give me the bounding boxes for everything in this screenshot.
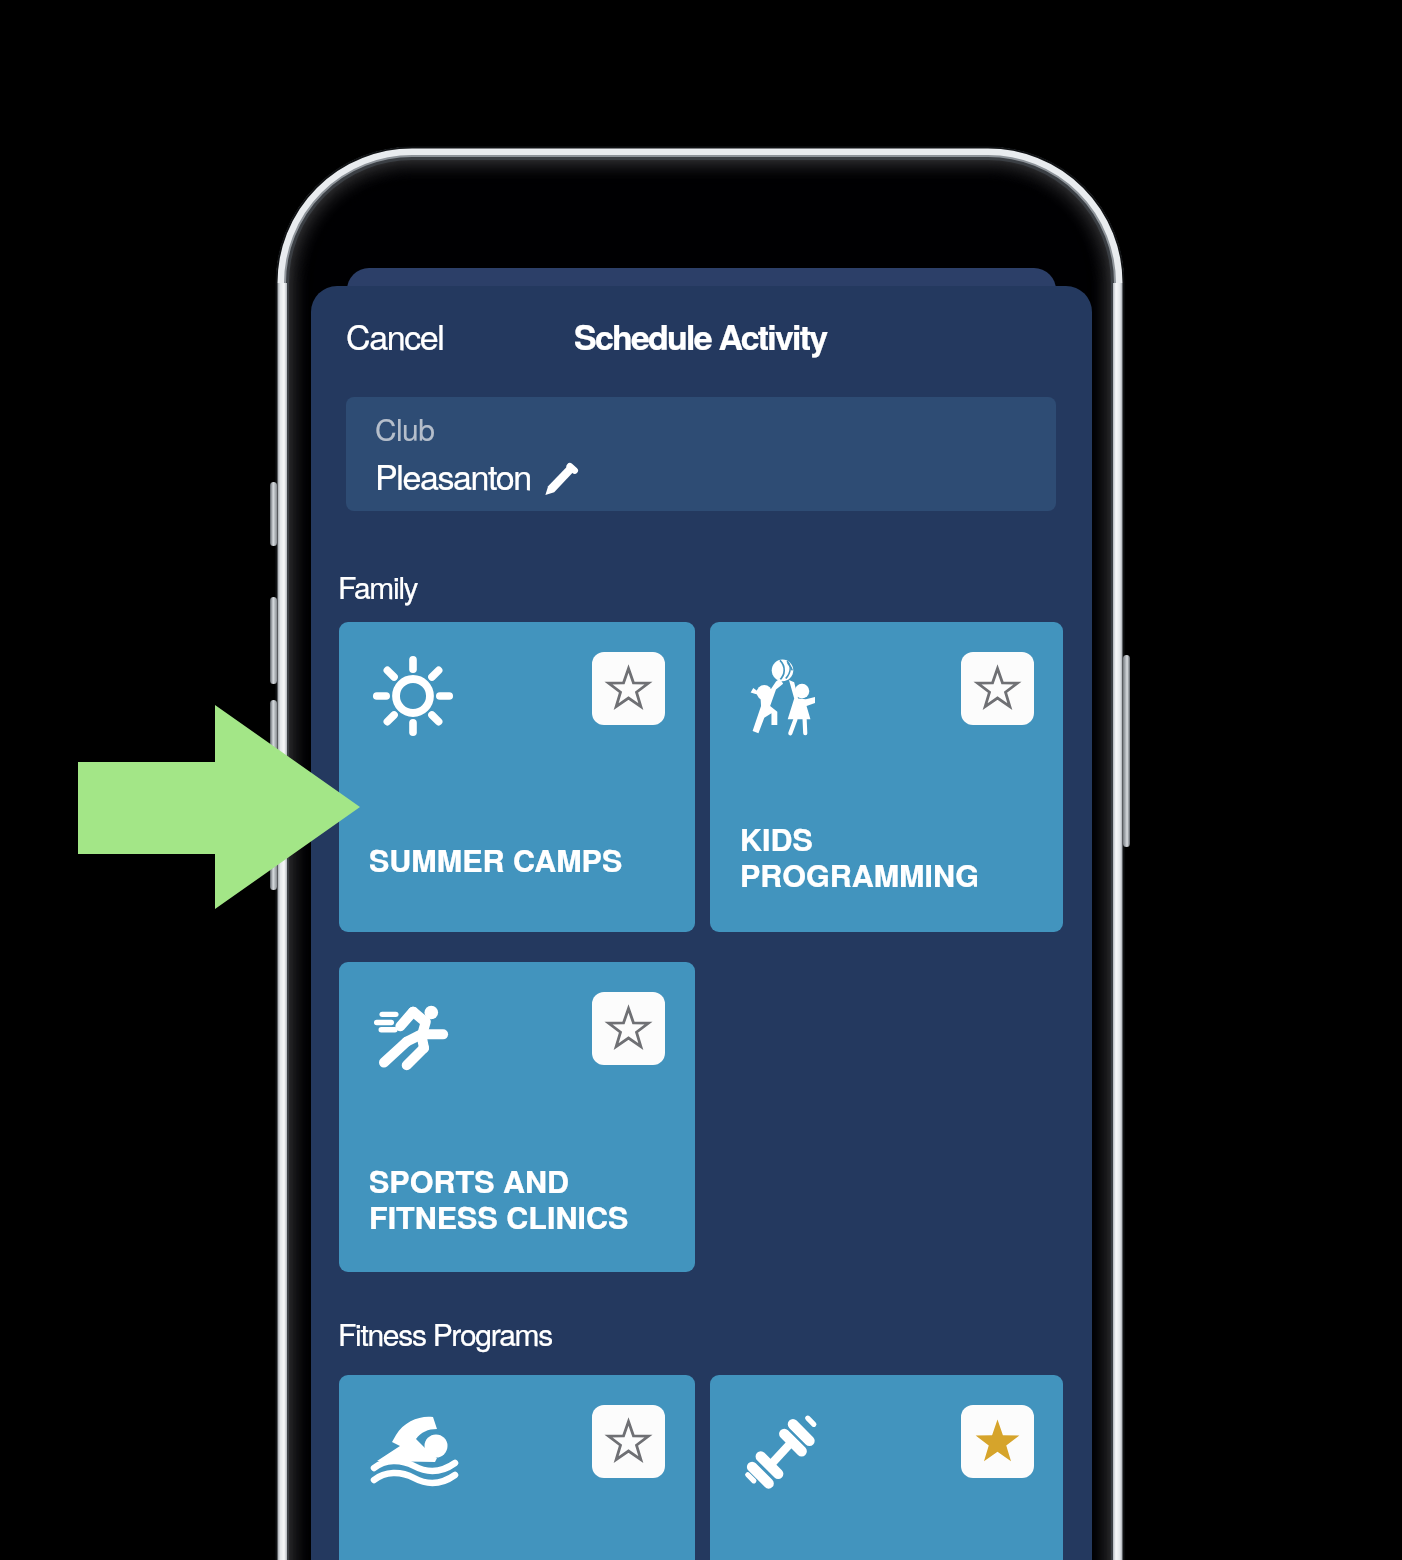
button[interactable]: Club: [346, 397, 1056, 511]
button[interactable]: Favorite: [961, 652, 1034, 725]
staticText: Family: [338, 565, 418, 608]
staticText: Club: [375, 407, 435, 450]
button[interactable]: Favorite: [592, 992, 665, 1065]
button[interactable]: Favorite: [961, 1405, 1034, 1478]
staticText: SUMMER CAMPS: [369, 838, 623, 882]
button[interactable]: Swimming: [339, 1375, 695, 1560]
button[interactable]: Cancel: [335, 309, 455, 361]
button[interactable]: Favorite: [710, 622, 1063, 932]
button[interactable]: Favorite: [592, 1405, 665, 1478]
staticText: Cancel: [346, 311, 444, 360]
staticText: Schedule Activity: [574, 312, 827, 361]
button[interactable]: Favorite: [339, 622, 695, 932]
staticText: KIDS PROGRAMMING: [740, 817, 980, 897]
button[interactable]: Favorite: [592, 652, 665, 725]
staticText: SPORTS AND FITNESS CLINICS: [369, 1159, 629, 1239]
staticText: Fitness Programs: [338, 1312, 552, 1355]
staticText: Pleasanton: [375, 451, 531, 500]
button[interactable]: Strength training: [710, 1375, 1063, 1560]
button[interactable]: Favorite: [339, 962, 695, 1272]
